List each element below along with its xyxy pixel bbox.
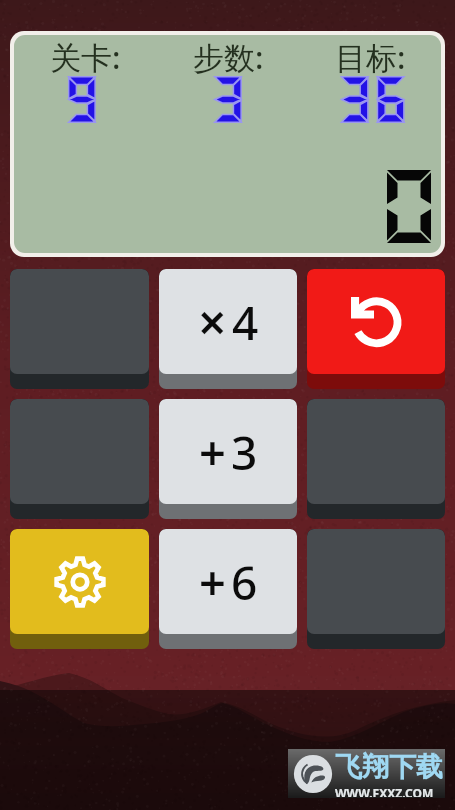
button[interactable]: + 6 [159, 529, 297, 649]
staticText: × [198, 288, 227, 356]
staticText: 目标: [335, 36, 406, 78]
staticText: 3 [231, 421, 258, 484]
button[interactable]: Tile [10, 269, 149, 389]
button[interactable]: + 3 [159, 399, 297, 519]
button[interactable]: Tile [307, 529, 445, 649]
staticText: 6 [231, 551, 258, 614]
button[interactable]: × 4 [159, 269, 297, 389]
staticText: WWW.FXXZ.COM [335, 785, 434, 797]
button[interactable]: Restart [307, 269, 445, 389]
button[interactable]: Tile [307, 399, 445, 519]
button[interactable]: Tile [10, 399, 149, 519]
staticText: + [199, 420, 226, 484]
staticText: 4 [232, 291, 259, 354]
staticText: + [199, 550, 226, 614]
button[interactable]: Settings [10, 529, 149, 649]
staticText: 步数: [193, 36, 264, 78]
staticText: 飞翔下载 [335, 750, 443, 784]
staticText: 关卡: [50, 36, 121, 78]
